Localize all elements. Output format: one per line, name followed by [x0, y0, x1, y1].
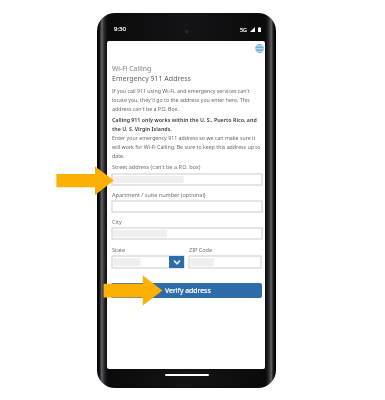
- button[interactable]: ZIP Code: [189, 256, 261, 268]
- staticText: Enter your emergency 911 address so we c…: [112, 134, 262, 160]
- staticText: Calling 911 only works within the U. S.,…: [112, 116, 262, 133]
- staticText: Emergency 911 Address: [112, 74, 191, 84]
- button[interactable]: Street address: [112, 174, 262, 185]
- staticText: State: [112, 246, 126, 253]
- staticText: If you call 911 using Wi-Fi, and emergen…: [112, 87, 262, 113]
- staticText: Wi-Fi Calling: [112, 64, 152, 73]
- button[interactable]: State: [112, 256, 184, 268]
- staticText: Verify address: [165, 286, 211, 295]
- button[interactable]: Verify address: [111, 283, 262, 298]
- button[interactable]: Apartment or suite number: [112, 201, 262, 212]
- staticText: Apartment / suite number (optional): [112, 191, 206, 198]
- button[interactable]: Open state dropdown: [169, 256, 184, 268]
- staticText: ZIP Code: [189, 246, 213, 253]
- button[interactable]: City: [112, 228, 262, 239]
- button[interactable]: AT&T logo: [255, 44, 264, 53]
- staticText: 5G: [240, 26, 247, 33]
- staticText: City: [112, 218, 122, 225]
- staticText: 9:30: [114, 25, 126, 33]
- staticText: Street address (can't be a P.O. box): [112, 163, 201, 170]
